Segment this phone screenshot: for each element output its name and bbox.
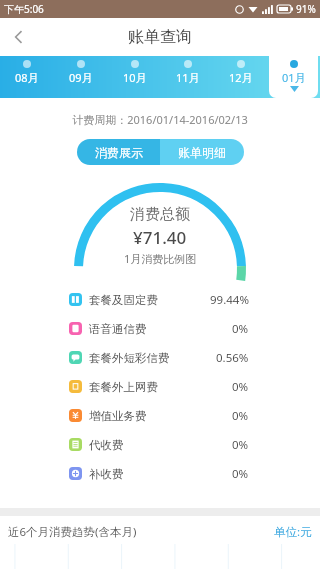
- button[interactable]: 11月: [161, 56, 214, 98]
- staticText: 10月: [123, 70, 147, 85]
- button[interactable]: 消费展示: [77, 139, 160, 165]
- staticText: 计费周期：2016/01/14-2016/02/13: [0, 112, 320, 127]
- button[interactable]: 套餐及固定费: [69, 285, 249, 314]
- staticText: 账单查询: [128, 27, 192, 47]
- staticText: 1月消费比例图: [124, 251, 197, 266]
- staticText: 09月: [69, 70, 93, 85]
- staticText: 11月: [176, 70, 200, 85]
- staticText: 12月: [229, 70, 253, 85]
- button[interactable]: 增值业务费: [69, 401, 249, 430]
- staticText: 增值业务费: [89, 409, 147, 423]
- staticText: 语音通信费: [89, 322, 147, 336]
- staticText: 0%: [232, 437, 249, 453]
- staticText: 0%: [232, 466, 249, 482]
- staticText: 账单明细: [178, 145, 226, 160]
- button[interactable]: 10月: [108, 56, 161, 98]
- staticText: 补收费: [89, 467, 124, 481]
- button[interactable]: 套餐外短彩信费: [69, 343, 249, 372]
- staticText: 0.56%: [216, 350, 249, 366]
- staticText: 消费总额: [130, 205, 190, 224]
- button[interactable]: 代收费: [69, 430, 249, 459]
- staticText: 0%: [232, 408, 249, 424]
- staticText: ¥71.40: [133, 226, 187, 249]
- staticText: 近6个月消费趋势(含本月): [8, 524, 137, 540]
- button[interactable]: 语音通信费: [69, 314, 249, 343]
- staticText: 99.44%: [210, 292, 249, 308]
- staticText: 0%: [232, 379, 249, 395]
- staticText: 下午5:06: [4, 2, 44, 16]
- button[interactable]: 账单明细: [160, 139, 244, 165]
- staticText: 套餐外短彩信费: [89, 351, 170, 365]
- staticText: 套餐外上网费: [89, 380, 158, 394]
- button[interactable]: 套餐外上网费: [69, 372, 249, 401]
- staticText: 代收费: [89, 438, 124, 452]
- staticText: 08月: [15, 70, 39, 85]
- button[interactable]: 01月: [267, 56, 320, 98]
- staticText: 消费展示: [95, 145, 143, 160]
- button[interactable]: 08月: [0, 56, 54, 98]
- staticText: 0%: [232, 321, 249, 337]
- staticText: 单位:元: [274, 524, 312, 540]
- staticText: 01月: [282, 70, 306, 85]
- staticText: 套餐及固定费: [89, 293, 158, 307]
- button[interactable]: 12月: [214, 56, 267, 98]
- button[interactable]: Back: [0, 18, 38, 56]
- button[interactable]: 09月: [54, 56, 108, 98]
- staticText: 91%: [296, 2, 316, 16]
- button[interactable]: 补收费: [69, 459, 249, 488]
